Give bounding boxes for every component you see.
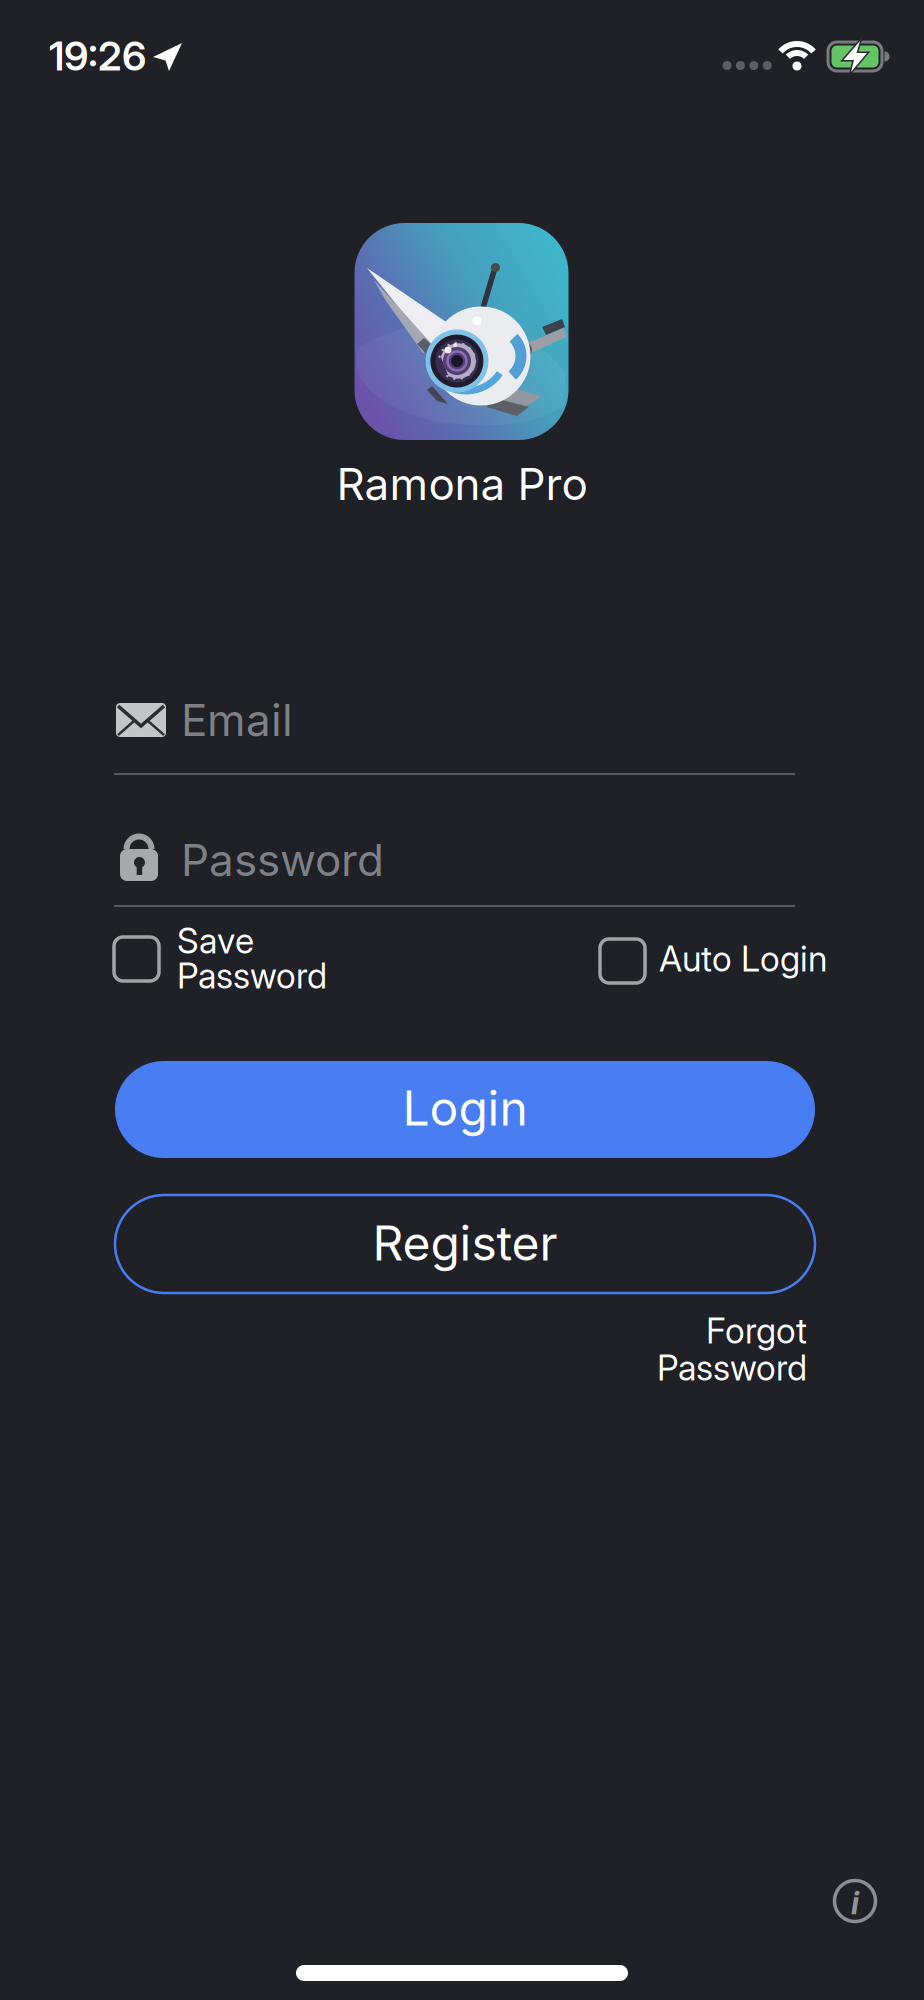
staticText: Ramona Pro: [336, 458, 587, 510]
staticText: Password: [177, 956, 327, 996]
staticText: Save: [177, 921, 254, 961]
staticText: Login: [402, 1080, 527, 1136]
staticText: Email: [181, 694, 293, 746]
staticText: 19:26: [49, 32, 146, 80]
staticText: Register: [372, 1215, 557, 1271]
staticText: Password: [181, 834, 384, 886]
staticText: i: [851, 1885, 859, 1921]
staticText: Auto Login: [659, 939, 827, 979]
staticText: Password: [657, 1348, 807, 1388]
staticText: Forgot: [706, 1311, 807, 1351]
